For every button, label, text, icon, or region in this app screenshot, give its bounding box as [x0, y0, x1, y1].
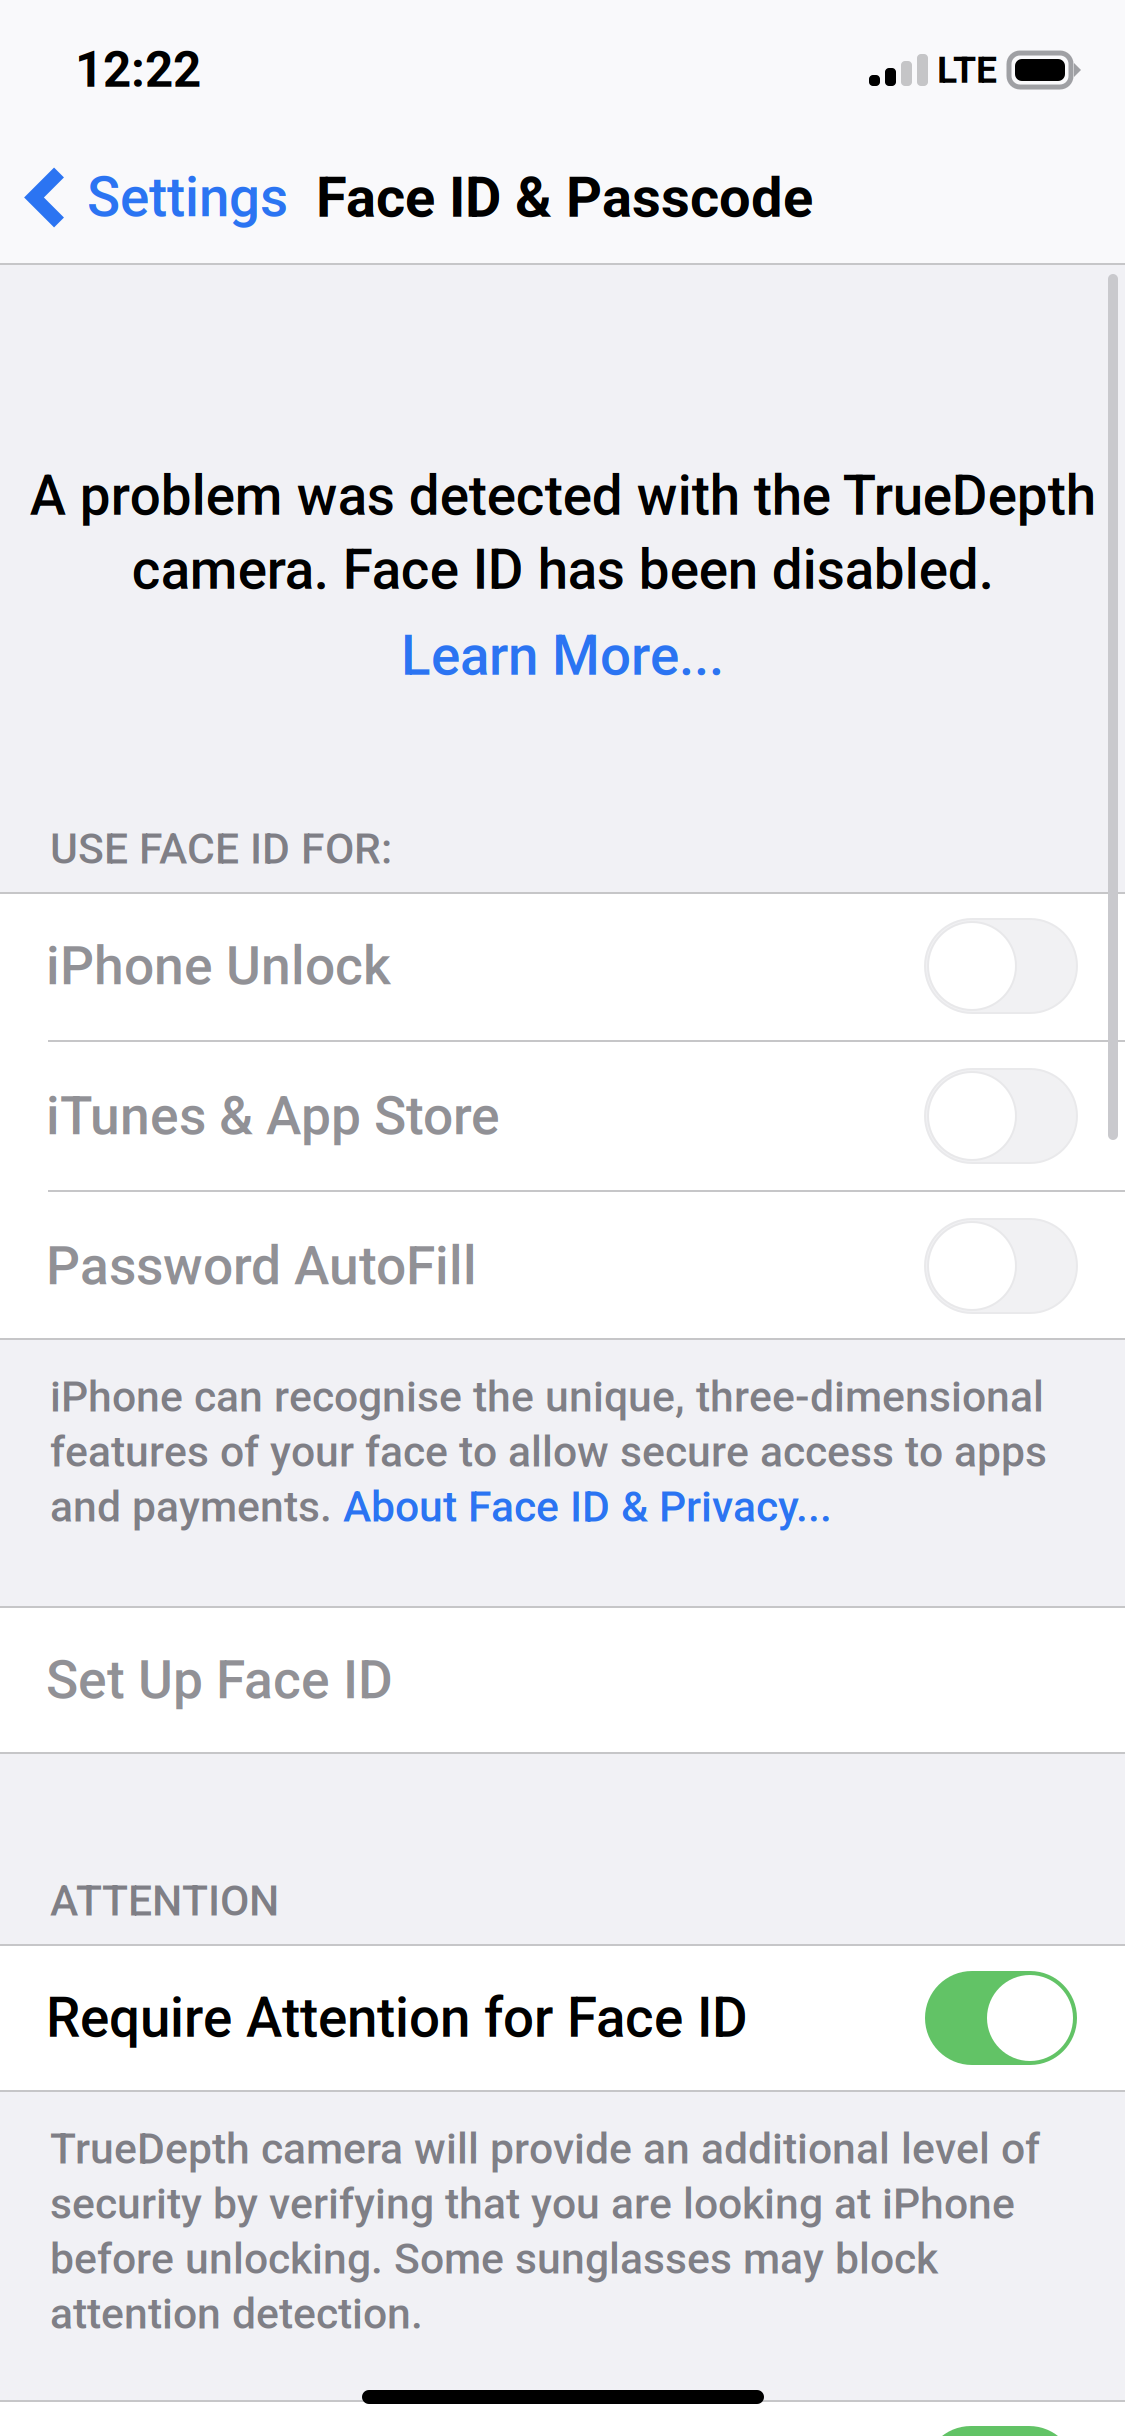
- button[interactable]: iPhone Unlock: [0, 892, 1125, 1040]
- staticText: ATTENTION: [50, 1876, 279, 1926]
- staticText: Set Up Face ID: [46, 1649, 393, 1711]
- staticText: iTunes & App Store: [46, 1085, 500, 1147]
- button[interactable]: Settings: [0, 132, 296, 263]
- staticText: USE FACE ID FOR:: [50, 824, 392, 874]
- staticText: 12:22: [75, 41, 201, 99]
- button[interactable]: Learn More...: [377, 602, 748, 706]
- button[interactable]: Set Up Face ID: [0, 1606, 1125, 1754]
- staticText: Require Attention for Face ID: [46, 1986, 748, 2050]
- staticText: A problem was detected with the TrueDept…: [29, 464, 1095, 602]
- staticText: Learn More...: [401, 624, 724, 688]
- staticText: iPhone can recognise the unique, three-d…: [50, 1372, 1047, 1532]
- staticText: Password AutoFill: [46, 1235, 477, 1297]
- staticText: Settings: [87, 165, 288, 230]
- staticText: Face ID & Passcode: [316, 165, 813, 230]
- button[interactable]: iTunes & App Store: [0, 1042, 1125, 1190]
- button[interactable]: Password AutoFill: [0, 1192, 1125, 1340]
- staticText: LTE: [937, 48, 997, 92]
- staticText: iPhone Unlock: [46, 935, 391, 997]
- button[interactable]: Require Attention for Face ID: [0, 1944, 1125, 2092]
- staticText: TrueDepth camera will provide an additio…: [50, 2124, 1040, 2339]
